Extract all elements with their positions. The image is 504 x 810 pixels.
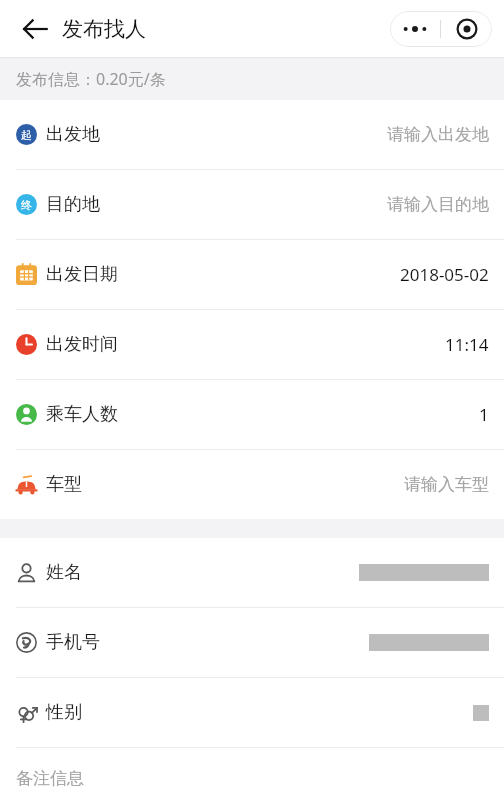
staticText: 手机号 [46, 631, 100, 654]
staticText: 备注信息 [16, 768, 84, 789]
button[interactable]: 姓名 [0, 538, 504, 607]
button[interactable]: 乘车人数 [0, 380, 504, 449]
staticText: 出发日期 [46, 263, 118, 286]
staticText: 发布找人 [62, 16, 146, 42]
staticText: 起 [21, 128, 32, 142]
staticText: 2018-05-02 [400, 263, 489, 286]
button[interactable]: Back [18, 12, 52, 46]
staticText: 发布信息：0.20元/条 [16, 68, 166, 90]
button[interactable]: Target [441, 11, 492, 47]
staticText: 性别 [46, 701, 82, 724]
staticText: 请输入目的地 [387, 194, 489, 215]
staticText: 请输入出发地 [387, 124, 489, 145]
staticText: 终 [21, 198, 32, 212]
staticText: 姓名 [46, 561, 82, 584]
staticText: 出发时间 [46, 333, 118, 356]
button[interactable]: 手机号 [0, 608, 504, 677]
staticText: 出发地 [46, 123, 100, 146]
button[interactable]: 出发日期 [0, 240, 504, 309]
button[interactable]: 性别 [0, 678, 504, 747]
staticText: 乘车人数 [46, 403, 118, 426]
button[interactable]: 车型 [0, 450, 504, 519]
button[interactable]: 终 [0, 170, 504, 239]
button[interactable]: 出发时间 [0, 310, 504, 379]
button[interactable]: More [390, 11, 440, 47]
staticText: 请输入车型 [404, 474, 489, 495]
staticText: 1 [479, 403, 489, 426]
staticText: 车型 [46, 473, 82, 496]
staticText: 目的地 [46, 193, 100, 216]
staticText: 11:14 [445, 333, 489, 356]
button[interactable]: 起 [0, 100, 504, 169]
